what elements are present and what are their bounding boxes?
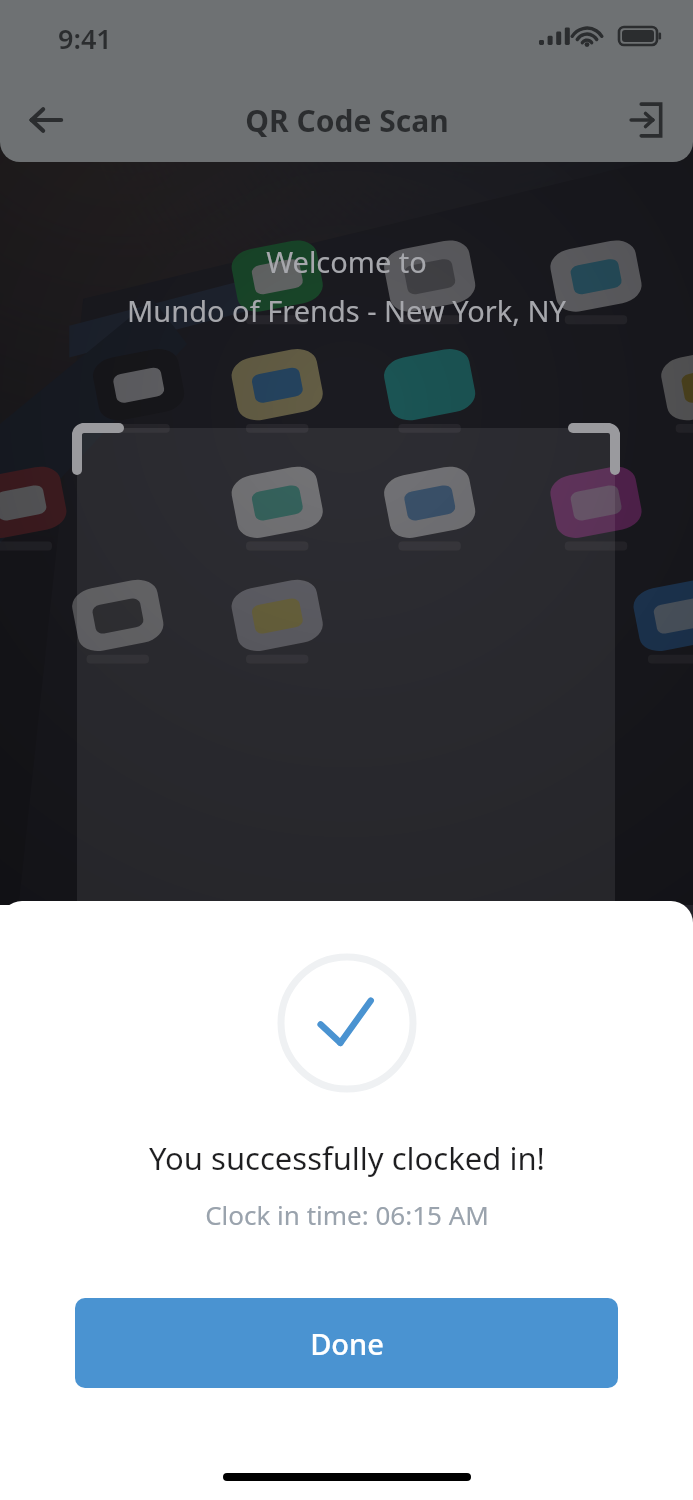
button[interactable]: Sign in <box>601 78 693 162</box>
button[interactable]: Done <box>75 1298 618 1388</box>
staticText: You successfully clocked in! <box>149 1137 545 1179</box>
staticText: QR Code Scan <box>245 100 449 141</box>
staticText: Welcome to <box>20 242 673 281</box>
button[interactable]: Back <box>0 78 92 162</box>
staticText: Mundo of Frends - New York, NY <box>20 291 673 330</box>
staticText: 9:41 <box>58 20 112 57</box>
staticText: Done <box>310 1324 384 1363</box>
staticText: Clock in time: 06:15 AM <box>205 1197 489 1232</box>
